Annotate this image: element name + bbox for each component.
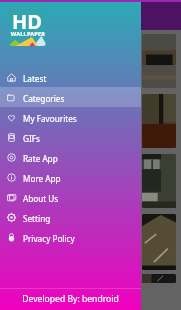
button[interactable] [142,154,176,208]
button[interactable] [142,94,176,148]
staticText: My Favourites [23,113,77,124]
staticText: Categories [23,93,65,104]
staticText: GIFs [23,133,40,144]
staticText: HD [12,9,42,35]
staticText: Privacy Policy [23,233,75,244]
staticText: Latest [23,73,47,84]
button[interactable] [142,274,176,283]
button[interactable]: GIFs [0,127,141,147]
staticText: Setting [23,213,51,224]
staticText: About Us [23,193,59,204]
staticText: Developed By: bendroid [22,293,119,305]
button[interactable] [142,214,176,270]
button[interactable]: More App [0,167,141,187]
button[interactable] [142,34,176,88]
button[interactable]: Setting [0,207,141,227]
button[interactable]: My Favourites [0,107,141,127]
button[interactable]: Categories [0,87,141,107]
button[interactable]: About Us [0,187,141,207]
staticText: WALLPAPER [10,30,46,38]
button[interactable]: Rate App [0,147,141,167]
button[interactable]: Privacy Policy [0,227,141,247]
button[interactable]: Latest [0,67,141,87]
staticText: Rate App [23,153,58,164]
staticText: More App [23,173,61,184]
